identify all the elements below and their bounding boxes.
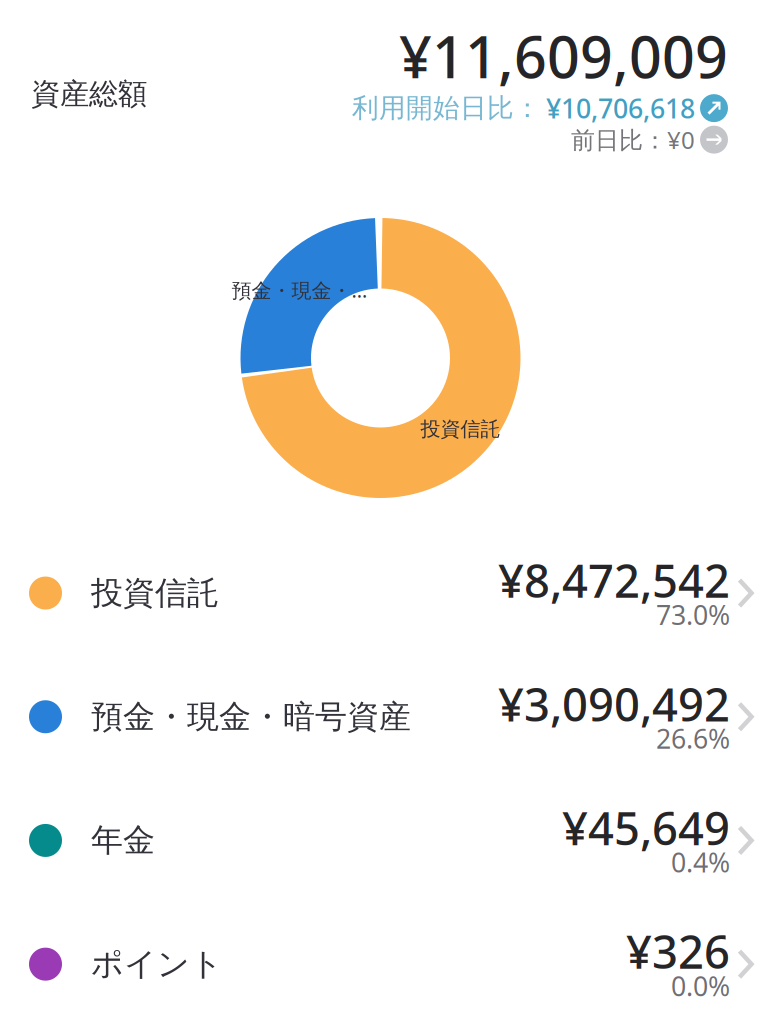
staticText: 利用開始日比： [352,92,541,125]
staticText: 投資信託 [420,417,500,441]
staticText: ¥8,472,542 [498,550,730,610]
staticText: 73.0% [656,597,730,632]
staticText: ¥326 [626,921,730,981]
button[interactable]: 利用開始日比： [352,94,728,122]
staticText: 投資信託 [91,573,219,613]
staticText: ¥10,706,618 [546,90,695,126]
staticText: 0.0% [671,968,730,1004]
button[interactable]: ポイント [0,902,761,1024]
staticText: ¥45,649 [562,797,730,858]
staticText: ポイント [91,944,223,984]
staticText: ¥3,090,492 [498,674,730,734]
staticText: 前日比：¥0 [571,124,695,156]
staticText: 年金 [91,821,155,860]
staticText: 預金・現金・暗号資産 [91,697,411,736]
staticText: ¥11,609,009 [399,18,728,94]
button[interactable]: 前日比：¥0 [571,122,728,157]
staticText: 預金・現金・… [231,277,367,303]
staticText: 0.4% [671,844,730,880]
button[interactable]: 投資信託 [0,531,761,655]
button[interactable]: 預金・現金・暗号資産 [0,655,761,779]
staticText: 26.6% [656,721,730,756]
button[interactable]: 年金 [0,779,761,902]
staticText: 資産総額 [31,76,147,112]
